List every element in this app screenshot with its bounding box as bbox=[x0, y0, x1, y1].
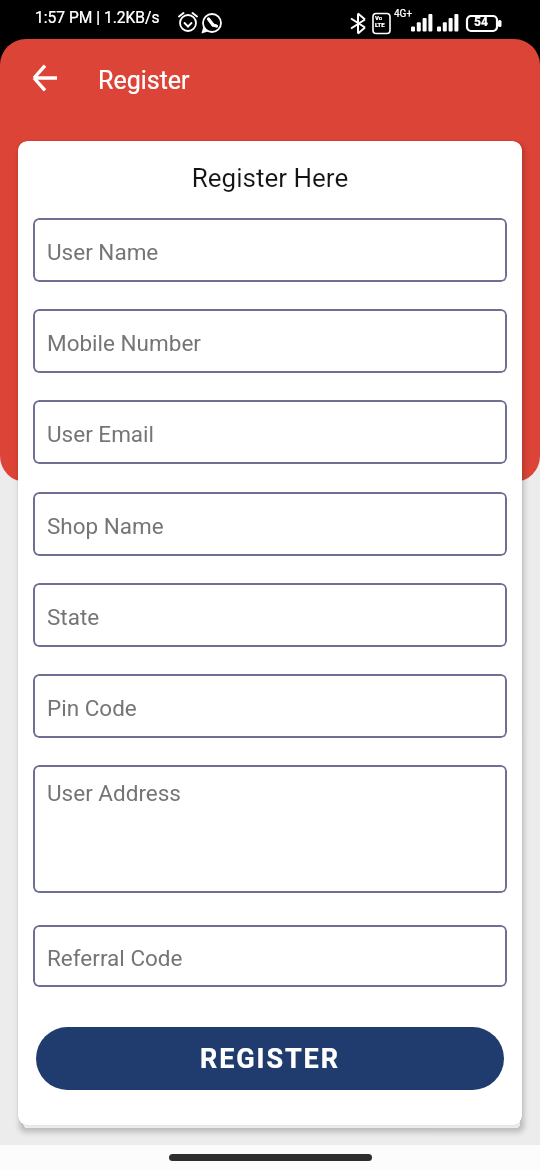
staticText: REGISTER bbox=[200, 1043, 340, 1075]
button[interactable]: State bbox=[33, 583, 507, 647]
button[interactable]: User Email bbox=[33, 400, 507, 464]
staticText: Register Here bbox=[33, 163, 507, 193]
staticText: State bbox=[47, 604, 100, 630]
staticText: Shop Name bbox=[47, 513, 164, 539]
button[interactable]: User Address bbox=[33, 765, 507, 893]
staticText: 54 bbox=[474, 15, 488, 29]
staticText: User Address bbox=[47, 780, 181, 806]
staticText: User Email bbox=[47, 421, 155, 447]
staticText: Pin Code bbox=[47, 695, 137, 721]
staticText: 4G+ bbox=[394, 8, 413, 20]
button[interactable]: Mobile Number bbox=[33, 309, 507, 373]
button[interactable]: Referral Code bbox=[33, 925, 507, 987]
staticText: Referral Code bbox=[47, 945, 183, 971]
staticText: Vo LTE bbox=[375, 14, 385, 28]
button[interactable]: REGISTER bbox=[36, 1027, 504, 1090]
staticText: User Name bbox=[47, 239, 159, 265]
button[interactable]: Pin Code bbox=[33, 674, 507, 738]
staticText: Register bbox=[98, 66, 190, 95]
staticText: 1:57 PM | 1.2KB/s bbox=[35, 9, 160, 27]
button[interactable]: User Name bbox=[33, 218, 507, 282]
button[interactable]: Back bbox=[21, 56, 69, 104]
staticText: Mobile Number bbox=[47, 330, 201, 356]
button[interactable]: Shop Name bbox=[33, 492, 507, 556]
